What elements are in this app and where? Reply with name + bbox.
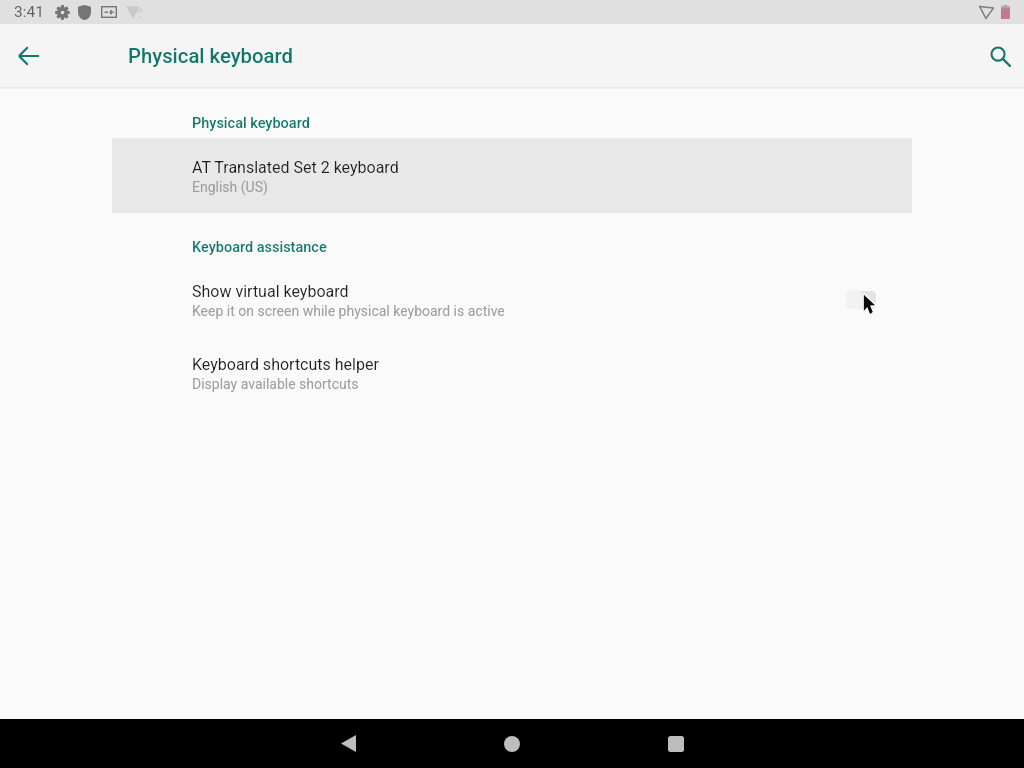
button[interactable]: Show virtual keyboard toggle [834,282,888,318]
button[interactable] [112,138,912,213]
button[interactable]: Keyboard shortcuts helper [192,355,832,392]
button[interactable]: AT Translated Set 2 keyboard [192,158,832,195]
staticText: Display available shortcuts [192,376,359,392]
staticText: Physical keyboard [128,44,293,68]
button[interactable]: Back [320,719,376,768]
staticText: English (US) [192,179,268,195]
staticText: AT Translated Set 2 keyboard [192,158,399,177]
staticText: Keep it on screen while physical keyboar… [192,303,505,319]
staticText: Show virtual keyboard [192,282,349,301]
staticText: Keyboard shortcuts helper [192,355,379,374]
button[interactable]: Home [484,719,540,768]
staticText: 3:41 [14,3,44,21]
button[interactable]: Navigate up [7,34,51,78]
staticText: Physical keyboard [192,115,310,132]
staticText: Keyboard assistance [192,239,327,256]
button[interactable]: Recent apps [648,719,704,768]
button[interactable]: Show virtual keyboard [192,282,832,319]
button[interactable]: Search [978,34,1022,78]
